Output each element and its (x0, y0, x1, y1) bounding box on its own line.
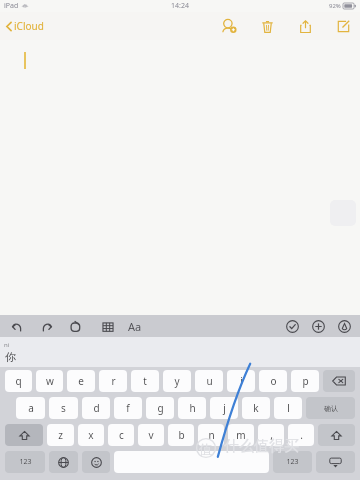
button[interactable]: g (146, 397, 174, 419)
button[interactable]: p (291, 370, 319, 392)
staticText: ni (4, 341, 10, 349)
button[interactable]: d (82, 397, 110, 419)
staticText: j (223, 401, 226, 415)
staticText: t (143, 374, 147, 388)
button[interactable]: iCloud (4, 16, 46, 36)
staticText: e (78, 374, 84, 388)
staticText: 123 (286, 457, 299, 467)
staticText: 什么值得买 (224, 437, 299, 456)
button[interactable]: o (259, 370, 287, 392)
button[interactable]: Backspace (323, 370, 355, 392)
staticText: s (61, 401, 66, 415)
button[interactable]: v (138, 424, 164, 446)
button[interactable]: 123 (5, 451, 45, 473)
button[interactable]: x (78, 424, 104, 446)
button[interactable]: Shift (5, 424, 43, 446)
staticText: d (93, 401, 100, 415)
button[interactable]: w (36, 370, 63, 392)
button[interactable]: e (67, 370, 95, 392)
staticText: u (206, 374, 213, 388)
button[interactable]: q (5, 370, 32, 392)
staticText: 值 (199, 441, 212, 457)
button[interactable]: Text format (125, 317, 144, 336)
button[interactable]: r (99, 370, 127, 392)
button[interactable]: t (131, 370, 159, 392)
button[interactable]: m (228, 424, 254, 446)
button[interactable]: l (274, 397, 302, 419)
button[interactable]: , (258, 424, 284, 446)
staticText: r (111, 374, 116, 388)
button[interactable]: Delete (257, 16, 277, 36)
button[interactable]: s (49, 397, 78, 419)
button[interactable]: . (288, 424, 314, 446)
button[interactable]: Hide keyboard (316, 451, 355, 473)
staticText: f (126, 401, 130, 415)
staticText: 123 (19, 457, 32, 467)
button[interactable]: 你 (4, 350, 17, 364)
staticText: 确认 (324, 404, 338, 413)
staticText: , (270, 428, 273, 442)
staticText: z (58, 428, 63, 442)
staticText: p (302, 374, 309, 388)
staticText: w (46, 374, 54, 388)
staticText: q (15, 374, 22, 388)
staticText: y (174, 374, 180, 388)
staticText: n (208, 428, 215, 442)
button[interactable]: Shift (318, 424, 355, 446)
button[interactable]: Add people (219, 16, 239, 36)
button[interactable]: c (108, 424, 134, 446)
staticText: v (148, 428, 154, 442)
staticText: l (287, 401, 290, 415)
button[interactable]: Undo (8, 318, 25, 335)
button[interactable]: z (47, 424, 74, 446)
button[interactable]: 123 (273, 451, 312, 473)
staticText: . (300, 428, 303, 442)
button[interactable]: 确认 (306, 397, 355, 419)
button[interactable]: Insert (310, 318, 327, 335)
button[interactable]: b (168, 424, 194, 446)
button[interactable]: u (195, 370, 223, 392)
staticText: m (236, 428, 246, 442)
staticText: x (88, 428, 94, 442)
staticText: 你 (5, 350, 16, 364)
button[interactable]: f (114, 397, 142, 419)
staticText: 14:24 (171, 1, 189, 11)
staticText: i (240, 374, 243, 388)
button[interactable]: h (178, 397, 206, 419)
button[interactable]: Space (114, 451, 269, 473)
staticText: h (189, 401, 196, 415)
button[interactable]: k (242, 397, 270, 419)
staticText: b (178, 428, 185, 442)
button[interactable]: Table (99, 318, 116, 335)
staticText: k (253, 401, 259, 415)
button[interactable]: Compose (333, 16, 353, 36)
button[interactable]: i (227, 370, 255, 392)
button[interactable]: Redo (38, 318, 55, 335)
staticText: g (157, 401, 164, 415)
staticText: iPad (4, 1, 19, 11)
button[interactable]: a (16, 397, 45, 419)
button[interactable]: Markup (336, 318, 353, 335)
staticText: a (28, 401, 34, 415)
staticText: iCloud (14, 19, 44, 33)
staticText: 92% (329, 2, 341, 10)
button[interactable]: y (163, 370, 191, 392)
button[interactable]: Emoji (82, 451, 110, 473)
button[interactable]: n (198, 424, 224, 446)
button[interactable]: Switch language (49, 451, 78, 473)
button[interactable]: j (210, 397, 238, 419)
staticText: c (119, 428, 124, 442)
button[interactable]: Share (295, 16, 315, 36)
button[interactable]: Checklist (284, 318, 301, 335)
staticText: o (270, 374, 277, 388)
staticText: Aa (128, 319, 142, 334)
button[interactable]: Paste (67, 318, 84, 335)
